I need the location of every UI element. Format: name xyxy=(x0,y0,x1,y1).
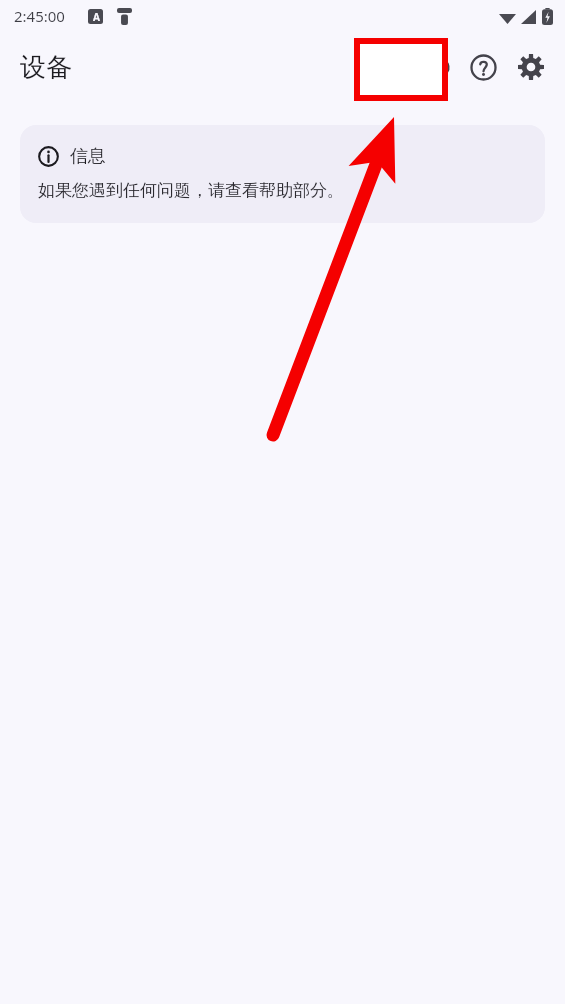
staticText: 如果您遇到任何问题，请查看帮助部分。 xyxy=(38,180,344,201)
button[interactable]: 信息 xyxy=(20,125,545,223)
staticText: 2:45:00 xyxy=(14,6,65,26)
staticText: A xyxy=(93,10,100,24)
button[interactable]: Settings xyxy=(507,43,555,91)
staticText: 信息 xyxy=(70,145,106,168)
button[interactable]: Bluetooth audio xyxy=(411,43,459,91)
button[interactable]: Help xyxy=(459,43,507,91)
staticText: 设备 xyxy=(20,51,72,84)
